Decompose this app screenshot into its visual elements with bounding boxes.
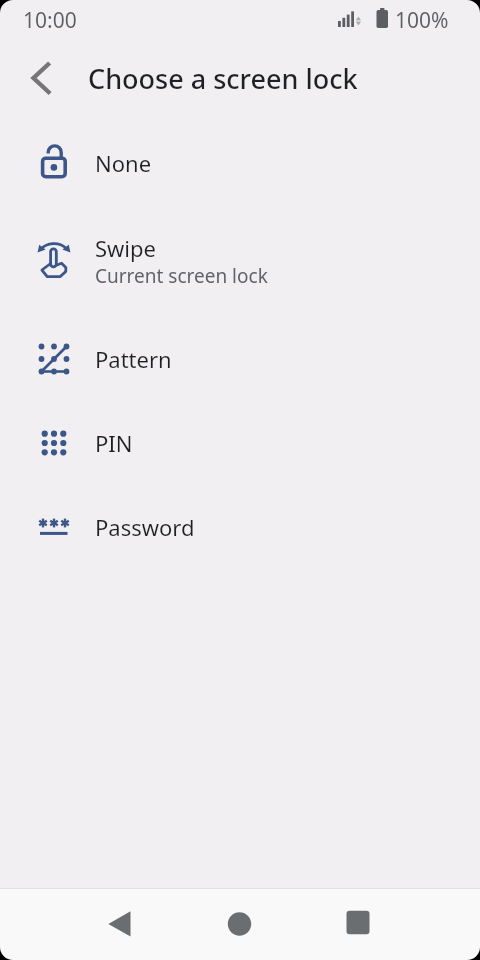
button[interactable] <box>95 889 143 960</box>
button[interactable]: Swipe <box>0 205 480 317</box>
button[interactable]: None <box>0 121 480 205</box>
button[interactable]: Pattern <box>0 317 480 401</box>
staticText: None <box>95 148 152 178</box>
button[interactable] <box>215 889 263 960</box>
staticText: Password <box>95 512 195 542</box>
button[interactable]: PIN <box>0 401 480 485</box>
button[interactable]: Password <box>0 485 480 569</box>
staticText: Pattern <box>95 344 172 374</box>
staticText: Swipe <box>95 233 156 263</box>
staticText: PIN <box>95 428 133 458</box>
staticText: Choose a screen lock <box>88 60 358 97</box>
button[interactable] <box>17 56 65 104</box>
button[interactable] <box>334 889 382 960</box>
staticText: 10:00 <box>23 6 77 35</box>
staticText: Current screen lock <box>95 263 268 289</box>
staticText: 100% <box>395 6 449 35</box>
